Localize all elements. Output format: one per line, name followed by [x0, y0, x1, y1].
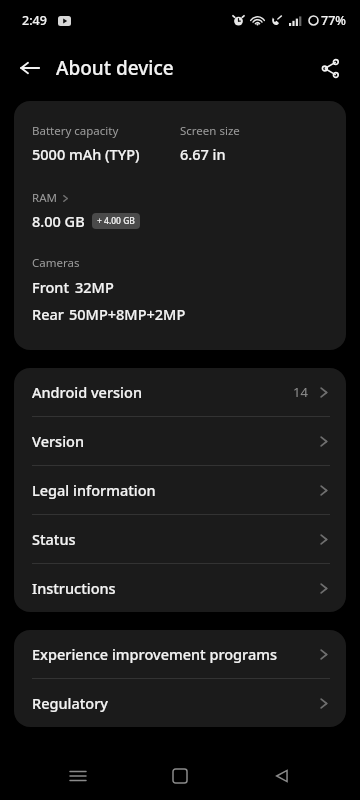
button[interactable]: Share: [308, 46, 352, 90]
button[interactable]: RAM: [32, 190, 70, 206]
staticText: About device: [56, 55, 174, 81]
staticText: Legal information: [32, 480, 317, 500]
staticText: Regulatory: [32, 693, 317, 713]
button[interactable]: Legal information: [14, 466, 346, 514]
staticText: 2:49: [22, 12, 47, 29]
staticText: Cameras: [32, 255, 80, 271]
staticText: 6.67 in: [180, 144, 226, 164]
button[interactable]: Instructions: [14, 564, 346, 612]
button[interactable]: Android version: [14, 368, 346, 416]
staticText: 77%: [321, 12, 346, 29]
staticText: Battery capacity: [32, 123, 119, 139]
staticText: RAM: [32, 190, 57, 206]
button[interactable]: Home: [156, 752, 204, 800]
button[interactable]: Back: [258, 752, 306, 800]
staticText: Experience improvement programs: [32, 644, 317, 664]
staticText: 8.00 GB: [32, 211, 85, 231]
button[interactable]: Regulatory: [14, 679, 346, 727]
staticText: Android version: [32, 382, 293, 402]
staticText: Version: [32, 431, 317, 451]
button[interactable]: Experience improvement programs: [14, 630, 346, 678]
staticText: Rear: [32, 304, 64, 324]
staticText: Instructions: [32, 578, 317, 598]
staticText: Screen size: [180, 123, 240, 139]
staticText: 5000 mAh (TYP): [32, 144, 140, 164]
staticText: 14: [293, 383, 308, 401]
button[interactable]: Version: [14, 417, 346, 465]
button[interactable]: Status: [14, 515, 346, 563]
staticText: 32MP: [75, 277, 114, 297]
staticText: Front: [32, 277, 70, 297]
button[interactable]: Recent apps: [54, 752, 102, 800]
staticText: Status: [32, 529, 317, 549]
staticText: + 4.00 GB: [97, 215, 135, 227]
staticText: 50MP+8MP+2MP: [69, 304, 186, 324]
button[interactable]: Back: [8, 46, 52, 90]
